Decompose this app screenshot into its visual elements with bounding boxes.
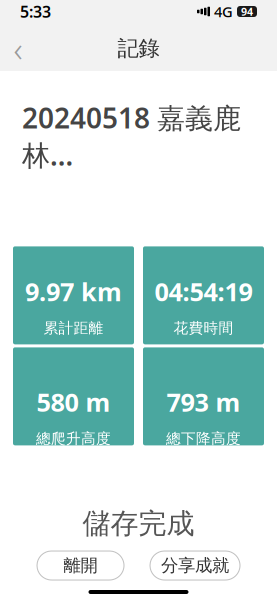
staticText: 儲存完成 xyxy=(82,506,194,541)
staticText: 累計距離 xyxy=(43,319,103,337)
staticText: 4G xyxy=(214,2,233,21)
button[interactable]: 分享成就 xyxy=(150,551,240,580)
button[interactable]: Back xyxy=(0,30,36,66)
staticText: 20240518 嘉義鹿林… xyxy=(22,99,241,173)
staticText: 793 m xyxy=(166,385,240,419)
staticText: 9.97 km xyxy=(25,274,122,308)
staticText: 總下降高度 xyxy=(166,430,241,448)
staticText: ‹ xyxy=(13,25,22,71)
staticText: 分享成就 xyxy=(161,555,229,576)
staticText: 花費時間 xyxy=(173,319,233,337)
staticText: 5:33 xyxy=(20,1,51,22)
staticText: 總爬升高度 xyxy=(36,430,111,448)
staticText: 580 m xyxy=(36,385,110,419)
staticText: 記錄 xyxy=(117,35,159,62)
staticText: 04:54:19 xyxy=(154,274,252,308)
button[interactable]: 離開 xyxy=(37,551,124,580)
staticText: 94 xyxy=(241,4,253,19)
staticText: 離開 xyxy=(63,555,97,576)
